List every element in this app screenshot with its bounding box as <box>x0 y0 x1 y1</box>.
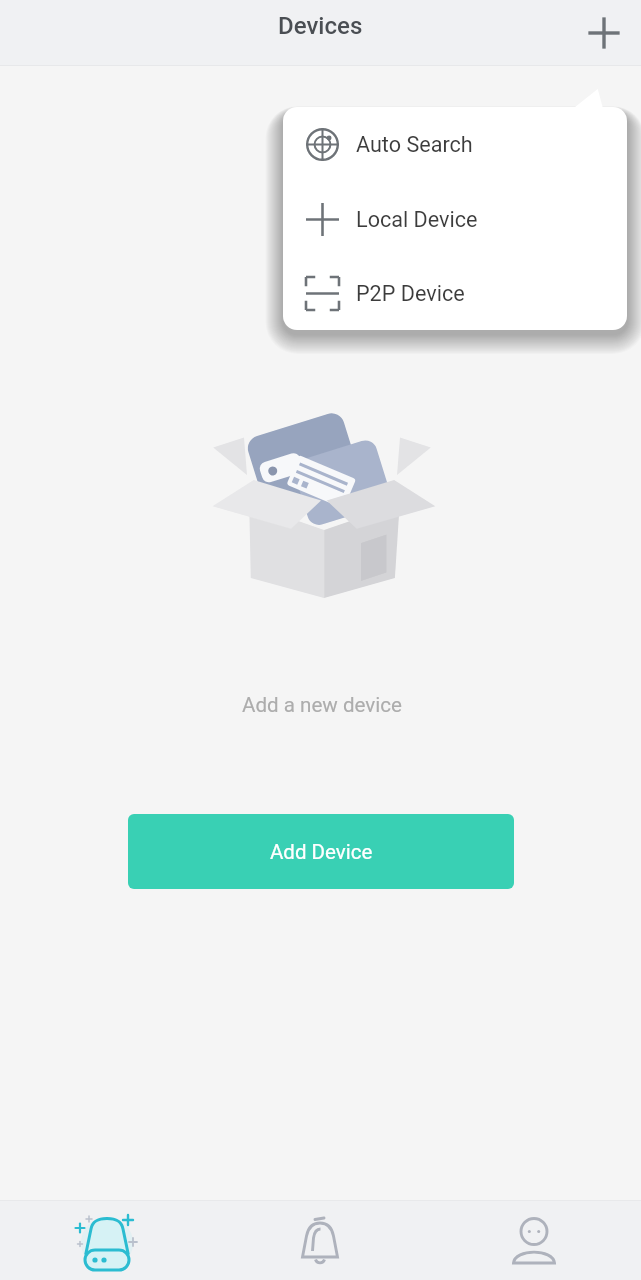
button[interactable]: P2P Device <box>283 256 627 330</box>
button[interactable]: Devices <box>0 1201 213 1280</box>
button[interactable]: Add Device <box>128 814 514 889</box>
staticText: Add Device <box>270 840 373 864</box>
staticText: Local Device <box>356 207 478 232</box>
button[interactable]: Local Device <box>283 182 627 256</box>
staticText: P2P Device <box>356 281 465 306</box>
button[interactable]: Profile <box>427 1201 641 1280</box>
staticText: Auto Search <box>356 132 473 157</box>
staticText: Add a new device <box>242 693 403 717</box>
staticText: Devices <box>278 12 363 40</box>
button[interactable]: Add device <box>580 9 628 57</box>
button[interactable]: Alerts <box>213 1201 427 1280</box>
button[interactable]: Auto Search <box>283 107 627 182</box>
